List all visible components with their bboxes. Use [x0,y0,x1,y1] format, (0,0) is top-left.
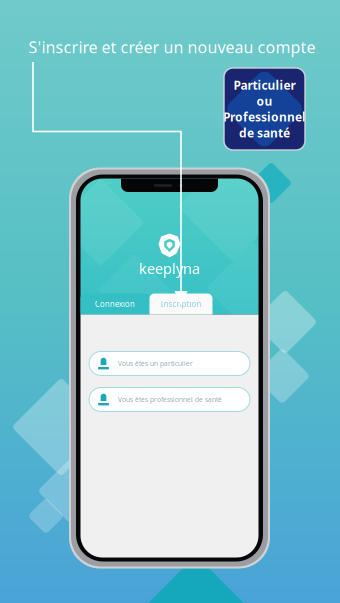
button[interactable]: Inscription [149,293,212,314]
button[interactable]: Connexion [80,293,149,314]
staticText: S'inscrire et créer un nouveau compte [28,36,315,58]
staticText: de santé [239,125,290,141]
button[interactable]: Vous êtes un particulier [89,351,250,375]
staticText: Vous êtes un particulier [118,359,193,368]
staticText: ou [256,93,272,109]
staticText: Professionnel [223,109,306,125]
staticText: keeplyna [139,258,200,278]
staticText: Connexion [95,299,135,309]
staticText: Vous êtes professionnel de santé [118,395,222,404]
staticText: Inscription [160,299,201,309]
button[interactable]: Vous êtes professionnel de santé [89,387,250,411]
staticText: Particulier [233,77,295,93]
